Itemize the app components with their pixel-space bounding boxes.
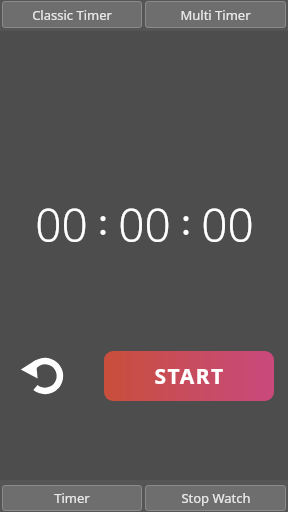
- staticText: START: [154, 362, 225, 391]
- staticText: 00: [201, 193, 254, 256]
- staticText: Stop Watch: [181, 489, 251, 507]
- staticText: Timer: [54, 489, 90, 507]
- staticText: Classic Timer: [32, 6, 112, 24]
- button[interactable]: Classic Timer: [2, 1, 142, 28]
- staticText: 00: [35, 193, 88, 256]
- button[interactable]: Multi Timer: [145, 1, 286, 28]
- staticText: Multi Timer: [180, 6, 251, 24]
- button[interactable]: Stop Watch: [145, 485, 286, 511]
- button[interactable]: START: [104, 351, 274, 401]
- button[interactable]: Reset: [20, 351, 70, 401]
- staticText: 00: [118, 193, 171, 256]
- button[interactable]: Timer: [2, 485, 142, 511]
